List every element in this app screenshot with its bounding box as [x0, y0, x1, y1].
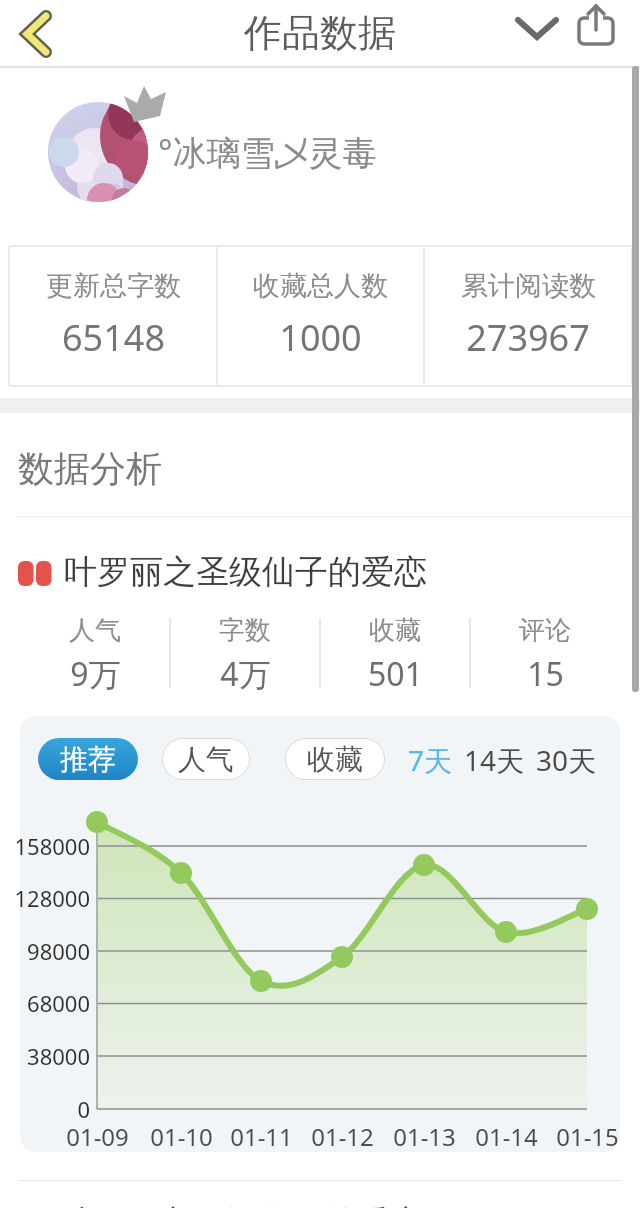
staticText: 0	[77, 1094, 90, 1124]
staticText: 15	[527, 652, 564, 696]
staticText: 更新总字数	[46, 269, 181, 303]
staticText: 1000	[279, 313, 362, 362]
staticText: 158000	[14, 831, 90, 861]
button[interactable]	[425, 252, 631, 382]
staticText: 128000	[14, 883, 90, 913]
button[interactable]: 收藏	[285, 738, 385, 780]
staticText: 收藏总人数	[253, 269, 388, 303]
staticText: 人气	[69, 614, 121, 647]
staticText: 收藏	[369, 614, 421, 647]
button[interactable]	[0, 540, 640, 604]
staticText: 字数	[219, 614, 271, 647]
button[interactable]	[508, 10, 566, 54]
button[interactable]	[14, 8, 64, 60]
staticText: 推荐	[60, 742, 116, 777]
staticText: 叶罗丽之圣级仙子的爱恋	[64, 551, 427, 593]
staticText: 01-12	[311, 1120, 374, 1153]
staticText: 68000	[27, 988, 90, 1018]
staticText: 01-13	[393, 1120, 456, 1153]
staticText: 65148	[62, 313, 165, 362]
staticText: 38000	[27, 1041, 90, 1071]
staticText: 01-11	[230, 1120, 293, 1153]
button[interactable]	[572, 2, 622, 50]
staticText: 叶罗丽之圣级仙子的爱恋	[60, 1202, 423, 1208]
button[interactable]	[217, 252, 423, 382]
staticText: 273967	[466, 313, 590, 362]
staticText: 01-14	[475, 1120, 538, 1153]
staticText: 01-09	[66, 1120, 129, 1153]
staticText: 评论	[519, 614, 571, 647]
staticText: 98000	[27, 936, 90, 966]
button[interactable]	[48, 102, 148, 202]
staticText: 501	[368, 652, 423, 696]
button[interactable]: 7天	[402, 740, 458, 780]
staticText: 收藏	[307, 742, 363, 777]
staticText: 数据分析	[18, 446, 162, 491]
staticText: 作品数据	[244, 9, 396, 57]
staticText: 01-15	[556, 1120, 619, 1153]
button[interactable]: 推荐	[38, 738, 138, 780]
button[interactable]: 人气	[162, 738, 250, 780]
staticText: 4万	[220, 652, 271, 696]
button[interactable]: 14天	[462, 740, 526, 780]
staticText: 14天	[464, 741, 525, 779]
staticText: 累计阅读数	[461, 269, 596, 303]
staticText: °冰璃雪乄灵毒	[158, 129, 377, 175]
staticText: 30天	[536, 741, 597, 779]
staticText: 9万	[70, 652, 121, 696]
staticText: 01-10	[150, 1120, 213, 1153]
staticText: 人气	[178, 742, 234, 777]
button[interactable]: 30天	[534, 740, 598, 780]
button[interactable]	[10, 252, 216, 382]
staticText: 7天	[408, 741, 453, 779]
